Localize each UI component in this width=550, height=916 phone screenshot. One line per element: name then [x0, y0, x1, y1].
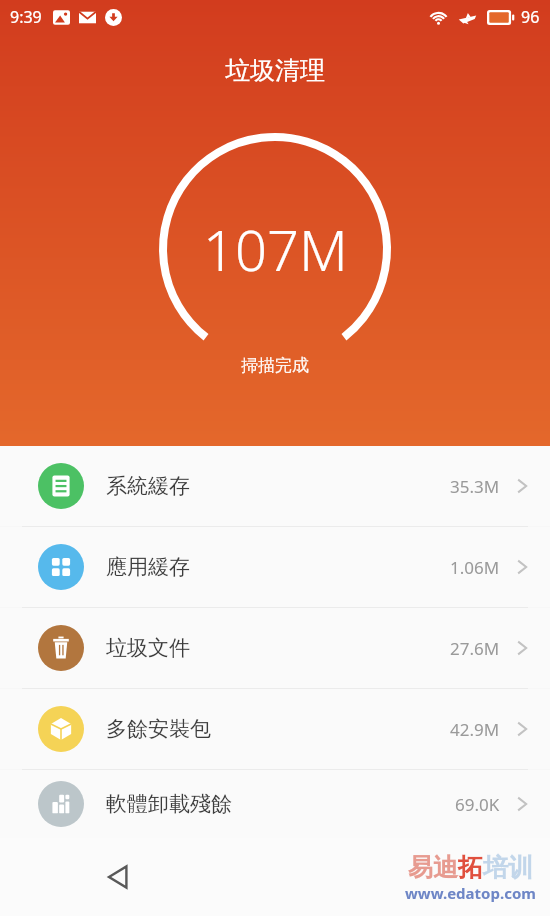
staticText: 27.6M: [450, 637, 500, 660]
staticText: 軟體卸載殘餘: [106, 791, 455, 817]
staticText: 35.3M: [450, 475, 500, 498]
button[interactable]: 系統緩存: [0, 446, 550, 526]
staticText: 拓: [458, 852, 483, 883]
staticText: 應用緩存: [106, 554, 450, 580]
staticText: 掃描完成: [241, 355, 309, 376]
staticText: 垃圾清理: [225, 55, 325, 86]
staticText: 1.06M: [450, 556, 500, 579]
staticText: 42.9M: [450, 718, 500, 741]
button[interactable]: 垃圾文件: [0, 608, 550, 688]
staticText: 多餘安裝包: [106, 716, 450, 742]
button[interactable]: 多餘安裝包: [0, 689, 550, 769]
button[interactable]: 應用緩存: [0, 527, 550, 607]
staticText: www.edatop.com: [405, 883, 536, 903]
staticText: 69.0K: [455, 793, 500, 816]
button[interactable]: 軟體卸載殘餘: [0, 770, 550, 838]
staticText: 9:39: [10, 6, 42, 28]
staticText: 垃圾文件: [106, 635, 450, 661]
staticText: 107M: [203, 211, 348, 287]
staticText: 培训: [483, 852, 533, 883]
button[interactable]: Back: [90, 849, 146, 905]
staticText: 系統緩存: [106, 473, 450, 499]
staticText: 易迪: [408, 852, 458, 883]
staticText: 96: [521, 6, 540, 28]
